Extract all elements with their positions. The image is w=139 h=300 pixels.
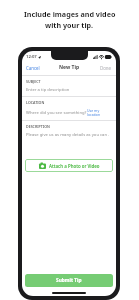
- staticText: DESCRIPTION: [26, 124, 50, 129]
- staticText: New Tip: [59, 64, 80, 71]
- staticText: Please give us as many details as you ca…: [26, 132, 110, 138]
- button[interactable]: Submit Tip: [25, 274, 113, 287]
- staticText: Attach a Photo or Video: [49, 163, 100, 169]
- button[interactable]: Cancel: [25, 64, 41, 72]
- button[interactable]: SUBJECT: [22, 76, 116, 96]
- button[interactable]: Attach a photo or video: [25, 159, 113, 172]
- staticText: Done: [100, 65, 112, 71]
- staticText: SUBJECT: [26, 79, 41, 84]
- staticText: 12:07: [26, 54, 37, 60]
- staticText: Use my location: [87, 108, 112, 117]
- staticText: with your tip.: [45, 20, 94, 30]
- other: Attach a photo or video: [39, 162, 46, 169]
- staticText: Cancel: [26, 65, 40, 71]
- button[interactable]: Use my location: [87, 108, 112, 117]
- staticText: LOCATION: [26, 100, 45, 105]
- staticText: Where did you see something?: [26, 110, 87, 116]
- staticText: Include images and video: [24, 9, 116, 19]
- staticText: Enter a tip description: [26, 87, 70, 93]
- button[interactable]: LOCATION: [22, 97, 116, 120]
- button[interactable]: Done: [99, 64, 113, 72]
- staticText: Submit Tip: [56, 277, 82, 284]
- button[interactable]: DESCRIPTION: [22, 121, 116, 140]
